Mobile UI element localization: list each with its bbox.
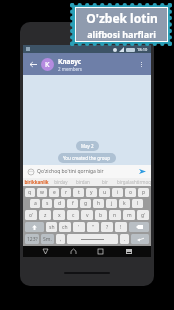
staticText: May 2 [81,143,94,149]
button[interactable]: 123? [25,234,39,244]
button[interactable]: Sm. [41,234,54,244]
button[interactable]: ? [101,222,113,232]
button[interactable]: ' [73,222,85,232]
staticText: ! [120,224,122,231]
button[interactable]: m [123,210,135,220]
button[interactable]: Back [27,58,39,70]
staticText: q [28,189,32,196]
staticText: sh [49,224,55,231]
button[interactable]: w [37,188,47,197]
button[interactable]: j [106,199,117,208]
button[interactable]: k [119,199,130,208]
staticText: birikkanlik [24,179,49,185]
button[interactable]: u [99,188,110,197]
staticText: You created the group [63,155,111,161]
button[interactable]: d [54,199,65,208]
button[interactable]: Recents [95,246,106,257]
staticText: e [53,189,56,196]
staticText: u [103,189,107,196]
button[interactable]: Key [131,234,149,244]
staticText: alifbosi harflari [87,28,156,40]
button[interactable]: sh [46,222,57,232]
button[interactable]: " [87,222,99,232]
button[interactable]: i [112,188,123,197]
button[interactable]: o' [25,210,37,220]
button[interactable]: g [80,199,91,208]
button[interactable]: n [109,210,121,220]
button[interactable]: p [138,188,149,197]
button[interactable]: bir [94,178,116,186]
button[interactable]: Key [129,222,149,232]
staticText: f [72,200,74,207]
button[interactable]: a [30,199,40,208]
button[interactable]: y [86,188,97,197]
staticText: Sm. [43,236,52,243]
button[interactable]: o [125,188,136,197]
button[interactable]: c [67,210,79,220]
staticText: ch [62,224,68,231]
staticText: b [99,212,103,219]
staticText: c [72,212,75,219]
button[interactable]: z [39,210,51,220]
button[interactable]: g' [137,210,149,220]
button[interactable]: f [67,199,78,208]
staticText: w [40,189,44,196]
button[interactable]: e [49,188,59,197]
staticText: birday [54,179,68,185]
staticText: K [45,60,50,70]
staticText: s [46,200,49,207]
button[interactable]: ! [115,222,127,232]
staticText: p [142,189,146,196]
staticText: n [113,212,117,219]
staticText: g' [141,212,146,219]
staticText: a [34,200,37,207]
staticText: bir [102,179,108,185]
staticText: o [129,189,133,196]
staticText: , [60,236,62,243]
staticText: ? [106,224,109,231]
button[interactable]: birgalashtirmoq [116,178,151,186]
button[interactable]: l [132,199,143,208]
staticText: i [117,189,119,196]
staticText: k [123,200,126,207]
button[interactable]: Keyboard [123,246,134,257]
button[interactable]: Send [137,166,148,177]
button[interactable]: t [73,188,84,197]
button[interactable]: Key [25,222,44,232]
staticText: O'zbek lotin [86,10,158,26]
staticText: r [65,189,68,196]
staticText: v [86,212,89,219]
button[interactable]: Key [67,234,118,244]
button[interactable]: b [95,210,107,220]
button[interactable]: birday [50,178,72,186]
staticText: t [78,189,80,196]
staticText: m [127,212,132,219]
staticText: Qo'zichoq bo'tini qorniga bir [37,168,137,175]
staticText: . [124,236,126,243]
button[interactable]: h [93,199,104,208]
button[interactable]: s [42,199,52,208]
button[interactable]: More options [135,58,147,70]
staticText: birgalashtirmoq [117,179,151,185]
button[interactable]: ch [59,222,71,232]
button[interactable]: Home [68,246,79,257]
button[interactable]: Emoji [26,167,35,176]
staticText: o' [29,212,34,219]
staticText: l [137,200,139,207]
button[interactable]: Back [40,246,51,257]
staticText: ' [78,224,80,231]
staticText: z [44,212,47,219]
button[interactable]: q [25,188,35,197]
staticText: y [90,189,93,196]
staticText: " [92,224,95,231]
staticText: 2 members [58,66,83,72]
staticText: birdan [76,179,90,185]
staticText: j [111,200,113,207]
button[interactable]: v [81,210,93,220]
button[interactable]: birikkanlik [23,178,50,186]
button[interactable]: r [61,188,71,197]
button[interactable]: x [53,210,65,220]
button[interactable]: birdan [72,178,94,186]
button[interactable]: , [56,234,65,244]
button[interactable]: . [120,234,129,244]
